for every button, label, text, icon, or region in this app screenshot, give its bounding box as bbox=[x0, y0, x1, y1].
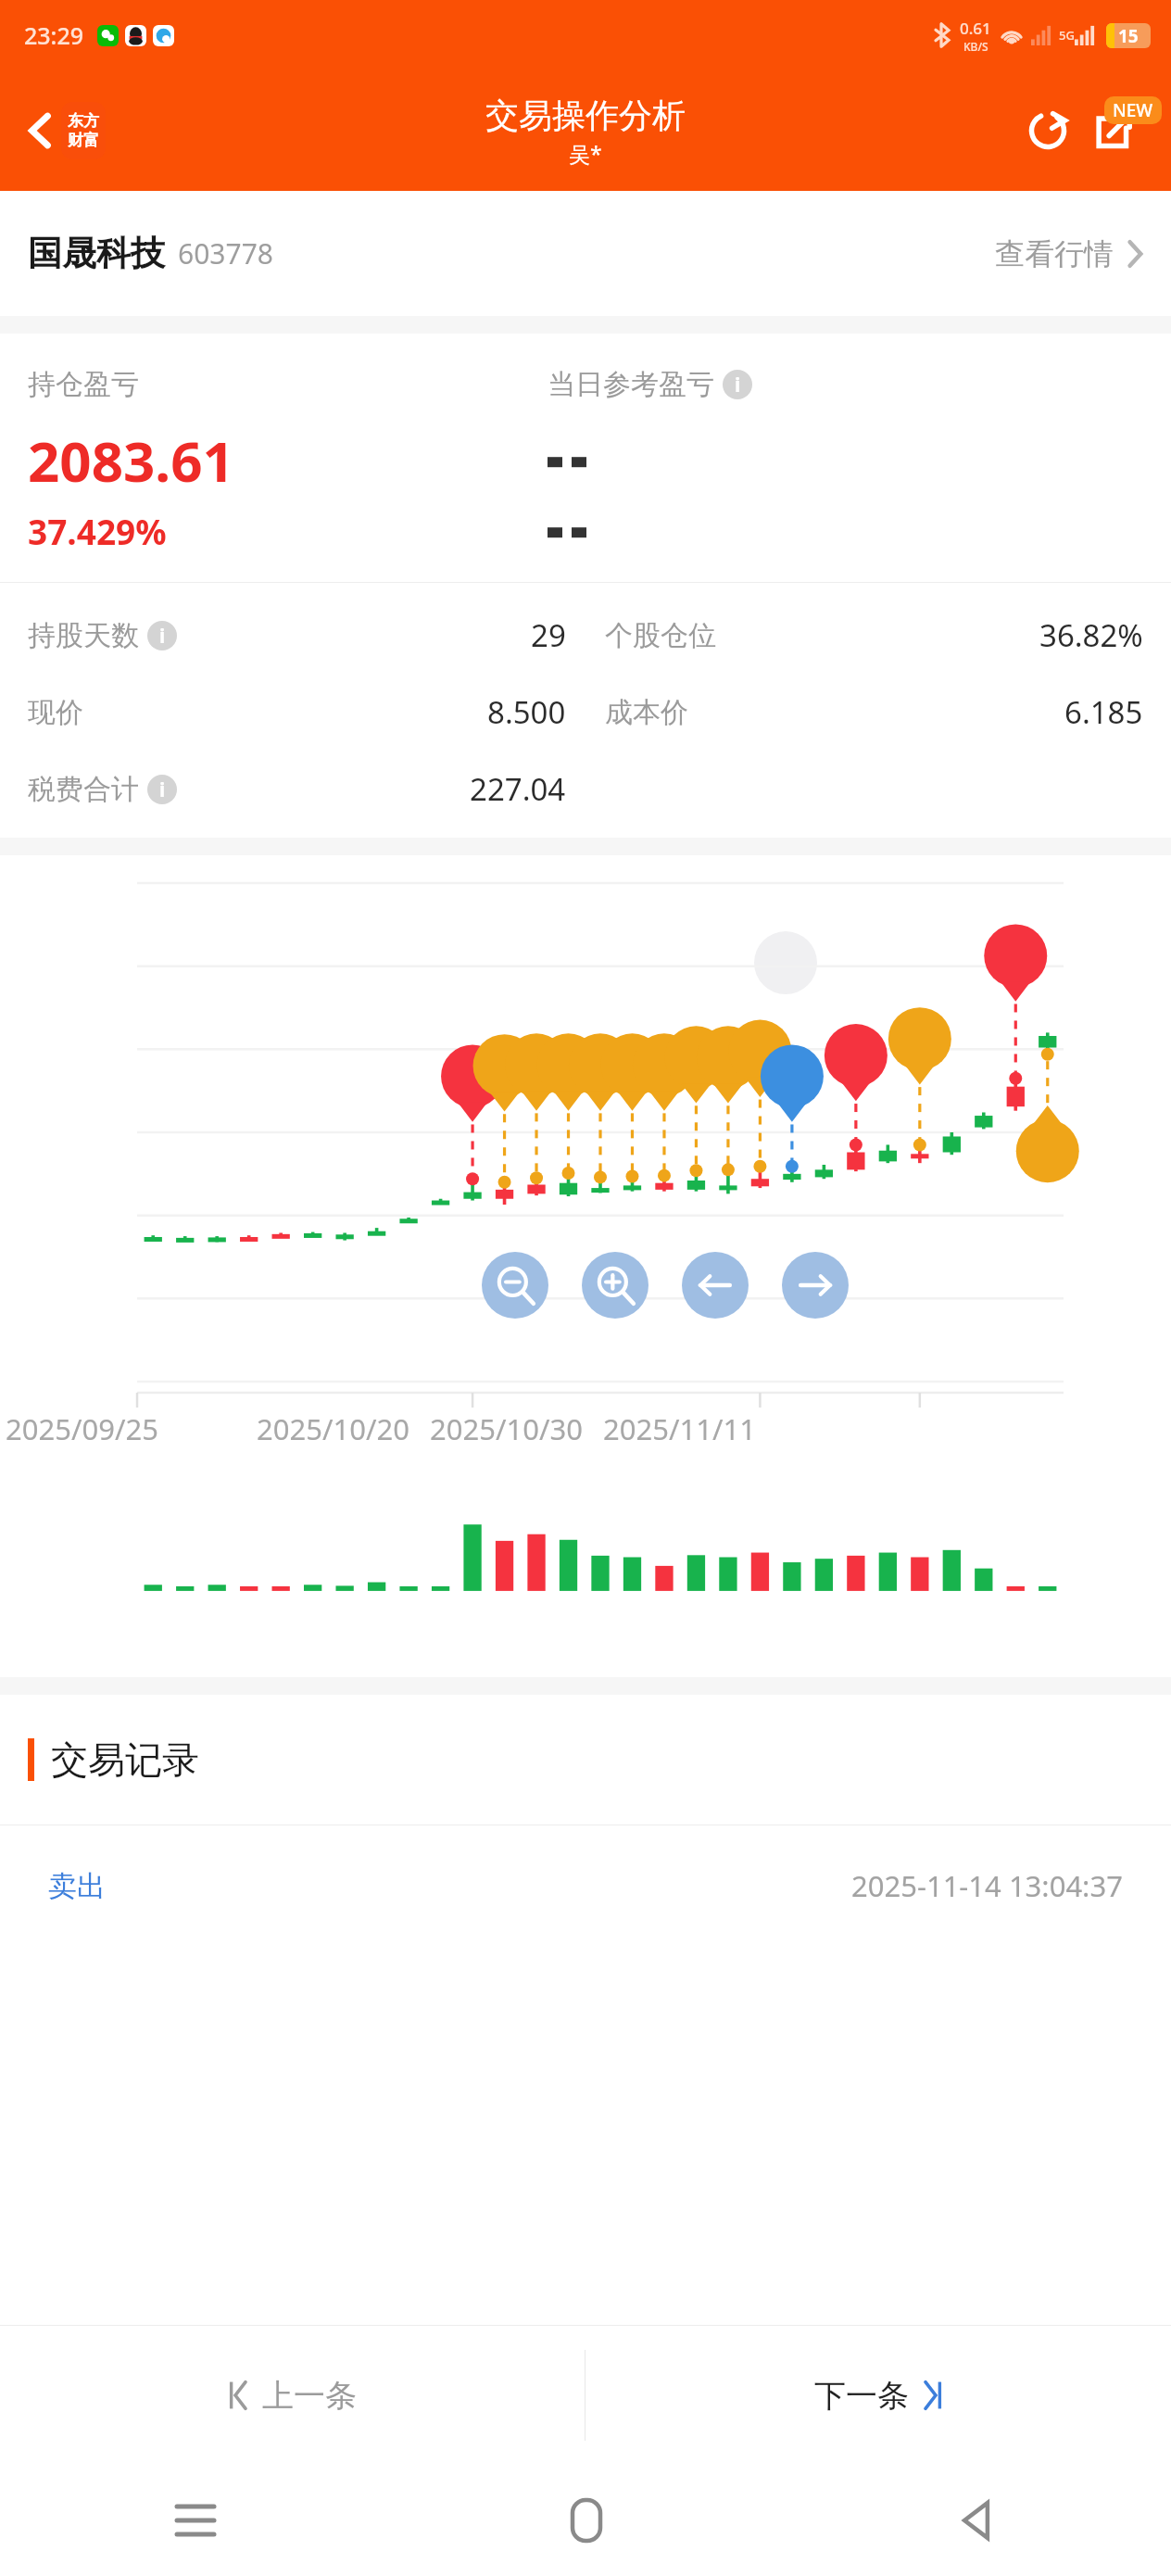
button[interactable]: Next bbox=[782, 1252, 849, 1319]
staticText: 37.429% bbox=[28, 508, 167, 554]
button[interactable]: 上一条 bbox=[0, 2326, 585, 2465]
staticText: 2025/09/25 bbox=[6, 1409, 158, 1448]
staticText: 2025/10/20 bbox=[257, 1409, 409, 1448]
staticText: 8.500 bbox=[487, 691, 566, 733]
staticText: 0.61 bbox=[960, 18, 991, 39]
staticText: 交易记录 bbox=[51, 1736, 199, 1783]
staticText: 当日参考盈亏 bbox=[548, 367, 714, 402]
staticText: 15 bbox=[1118, 24, 1139, 48]
staticText: 持仓盈亏 bbox=[28, 367, 139, 402]
staticText: 个股仓位 bbox=[605, 618, 716, 653]
button[interactable]: Back bbox=[781, 2465, 1171, 2576]
staticText: 持股天数 bbox=[28, 618, 139, 653]
staticText: 卖出 bbox=[48, 1868, 106, 1904]
staticText: 2025/11/11 bbox=[603, 1409, 756, 1448]
button[interactable]: Recents bbox=[0, 2465, 391, 2576]
staticText: 下一条 bbox=[814, 2376, 909, 2416]
staticText: 现价 bbox=[28, 695, 83, 730]
staticText: 东方 bbox=[68, 111, 99, 131]
button[interactable]: Back bbox=[20, 96, 111, 165]
staticText: 国晟科技 bbox=[28, 232, 165, 275]
staticText: 5G bbox=[1059, 27, 1075, 44]
button[interactable]: Share bbox=[1086, 106, 1151, 156]
staticText: 2025-11-14 13:04:37 bbox=[851, 1866, 1123, 1905]
button[interactable]: Zoom in bbox=[582, 1252, 648, 1319]
staticText: 227.04 bbox=[470, 768, 566, 810]
staticText: 23:29 bbox=[24, 19, 84, 51]
staticText: 2025/10/30 bbox=[430, 1409, 583, 1448]
staticText: i bbox=[735, 372, 741, 398]
staticText: KB/S bbox=[963, 39, 988, 54]
button[interactable]: Home bbox=[391, 2465, 781, 2576]
button[interactable]: 卖出 bbox=[0, 1825, 1171, 1946]
staticText: i bbox=[159, 623, 166, 650]
staticText: 2083.61 bbox=[28, 423, 234, 499]
staticText: 查看行情 bbox=[995, 235, 1114, 272]
button[interactable]: 下一条 bbox=[585, 2326, 1171, 2465]
button[interactable]: Zoom out bbox=[482, 1252, 548, 1319]
staticText: 29 bbox=[531, 614, 566, 656]
staticText: 36.82% bbox=[1039, 614, 1143, 656]
staticText: 成本价 bbox=[605, 695, 688, 730]
staticText: 交易操作分析 bbox=[485, 95, 686, 136]
staticText: 税费合计 bbox=[28, 772, 139, 807]
button[interactable]: Previous bbox=[682, 1252, 749, 1319]
staticText: 603778 bbox=[178, 234, 273, 272]
button[interactable]: 国晟科技 bbox=[0, 191, 1171, 316]
staticText: 上一条 bbox=[262, 2376, 357, 2416]
staticText: i bbox=[159, 777, 166, 803]
button[interactable]: Refresh bbox=[1023, 106, 1073, 156]
staticText: 吴* bbox=[569, 139, 602, 168]
staticText: NEW bbox=[1113, 98, 1153, 122]
staticText: 6.185 bbox=[1064, 691, 1143, 733]
staticText: 财富 bbox=[68, 131, 99, 150]
